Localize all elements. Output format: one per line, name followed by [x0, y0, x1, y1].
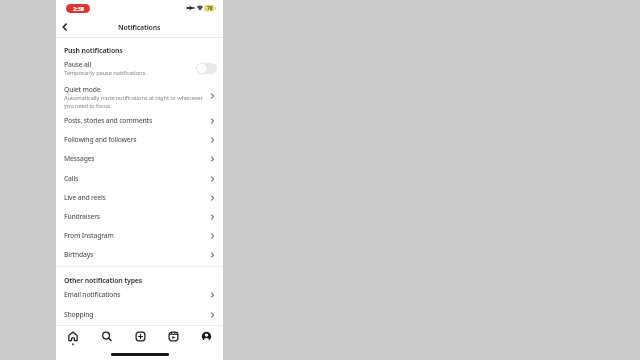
- staticText: Automatically mute notifications at nigh…: [64, 94, 203, 102]
- button[interactable]: Messages: [56, 149, 223, 168]
- button[interactable]: Posts, stories and comments: [56, 111, 223, 130]
- staticText: Messages: [64, 154, 95, 163]
- button[interactable]: Shopping: [56, 305, 223, 324]
- button[interactable]: Quiet mode: [56, 82, 223, 110]
- staticText: Following and followers: [64, 135, 137, 144]
- staticText: Quiet mode: [64, 85, 101, 94]
- staticText: you need to focus.: [64, 102, 112, 110]
- staticText: Pause all: [64, 60, 92, 69]
- staticText: Shopping: [64, 310, 94, 319]
- staticText: Email notifications: [64, 290, 121, 299]
- button[interactable]: Pause all: [56, 57, 223, 80]
- staticText: Push notifications: [64, 46, 123, 55]
- button[interactable]: [190, 326, 223, 348]
- staticText: Temporarily pause notifications: [64, 69, 146, 77]
- staticText: Live and reels: [64, 193, 106, 202]
- staticText: Birthdays: [64, 250, 94, 259]
- staticText: Other notification types: [64, 276, 143, 285]
- button[interactable]: [157, 326, 190, 348]
- button[interactable]: From Instagram: [56, 226, 223, 245]
- staticText: Fundraisers: [64, 212, 100, 221]
- staticText: Calls: [64, 174, 79, 183]
- staticText: From Instagram: [64, 231, 114, 240]
- button[interactable]: Fundraisers: [56, 207, 223, 226]
- staticText: 70: [207, 5, 213, 12]
- button[interactable]: Live and reels: [56, 188, 223, 207]
- button[interactable]: [56, 16, 80, 38]
- button[interactable]: Email notifications: [56, 285, 223, 304]
- button[interactable]: Calls: [56, 169, 223, 188]
- button[interactable]: [90, 326, 124, 348]
- button[interactable]: [56, 326, 90, 348]
- staticText: Posts, stories and comments: [64, 116, 153, 125]
- staticText: Notifications: [118, 23, 161, 32]
- button[interactable]: Following and followers: [56, 130, 223, 149]
- staticText: 2:38: [73, 5, 84, 12]
- button[interactable]: [124, 326, 157, 348]
- button[interactable]: Birthdays: [56, 245, 223, 264]
